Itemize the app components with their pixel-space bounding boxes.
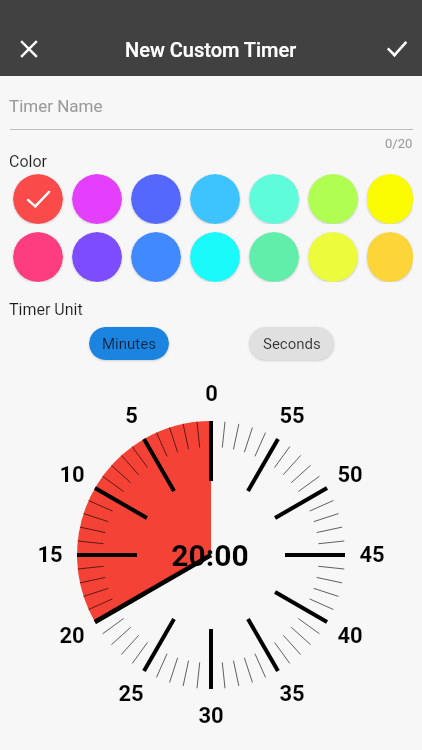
- staticText: 25: [118, 681, 144, 707]
- button[interactable]: [190, 174, 240, 224]
- staticText: 15: [37, 542, 63, 568]
- staticText: 20:00: [171, 538, 249, 573]
- button[interactable]: [131, 174, 181, 224]
- staticText: 55: [279, 403, 305, 429]
- button[interactable]: [13, 174, 63, 224]
- button[interactable]: [13, 232, 63, 282]
- staticText: 35: [279, 681, 305, 707]
- staticText: 5: [125, 403, 138, 429]
- staticText: 0: [205, 381, 218, 407]
- staticText: Minutes: [102, 335, 156, 353]
- staticText: Color: [9, 152, 47, 171]
- staticText: 20: [59, 623, 85, 649]
- button[interactable]: [131, 232, 181, 282]
- button[interactable]: [249, 174, 299, 224]
- button[interactable]: [367, 174, 413, 224]
- button[interactable]: [72, 174, 122, 224]
- staticText: 50: [337, 462, 363, 488]
- staticText: Timer Unit: [9, 300, 83, 319]
- staticText: 10: [59, 462, 85, 488]
- staticText: 0/20: [385, 136, 413, 151]
- button[interactable]: [308, 232, 358, 282]
- staticText: 30: [198, 703, 224, 729]
- button[interactable]: [367, 232, 413, 282]
- staticText: 40: [337, 623, 363, 649]
- button[interactable]: [72, 232, 122, 282]
- staticText: 45: [359, 542, 385, 568]
- button[interactable]: Save: [377, 29, 417, 69]
- button[interactable]: [308, 174, 358, 224]
- button[interactable]: [249, 232, 299, 282]
- button[interactable]: [190, 232, 240, 282]
- button[interactable]: Close: [9, 29, 49, 69]
- staticText: New Custom Timer: [125, 38, 297, 61]
- staticText: Timer Name: [9, 96, 103, 116]
- staticText: Seconds: [263, 335, 321, 353]
- button[interactable]: Seconds: [249, 327, 334, 360]
- button[interactable]: Minutes: [89, 327, 169, 360]
